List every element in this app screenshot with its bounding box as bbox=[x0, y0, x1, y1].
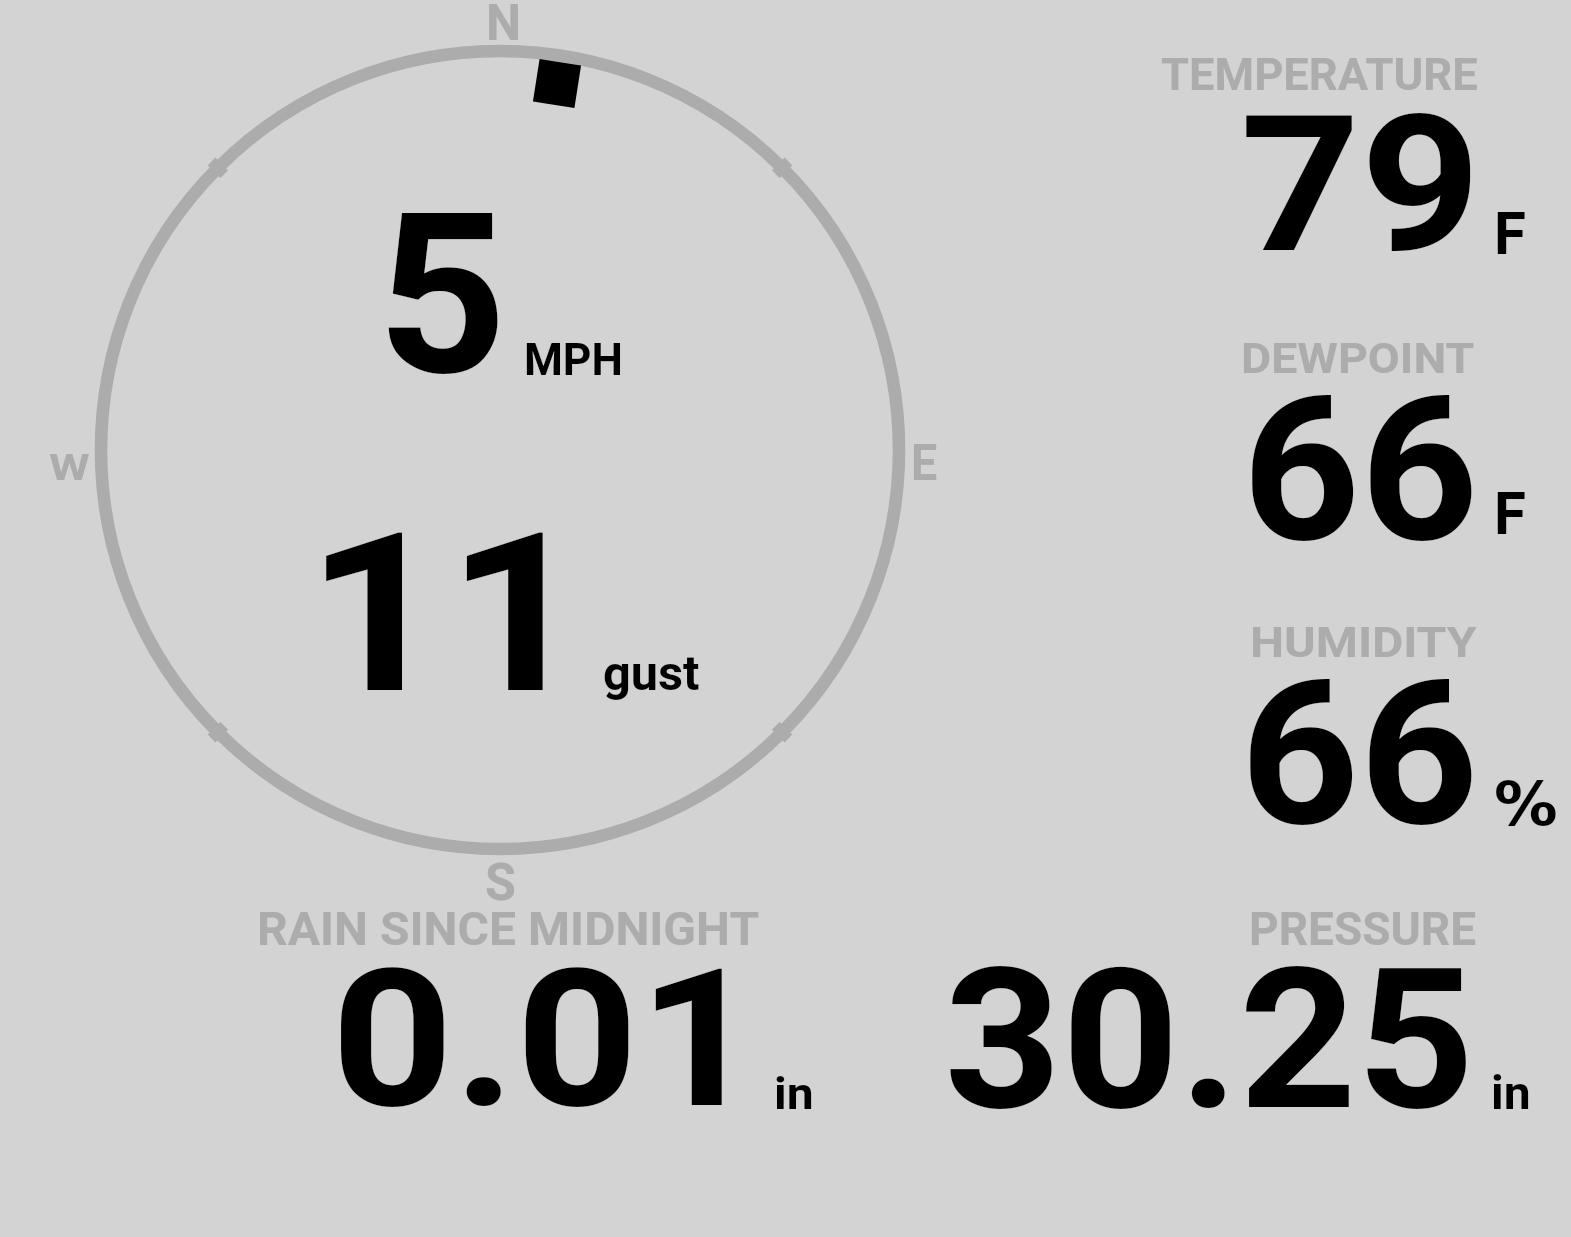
button[interactable]: TEMPERATURE bbox=[1000, 20, 1560, 290]
staticText: DEWPOINT bbox=[1241, 333, 1475, 384]
staticText: 79 bbox=[1240, 75, 1482, 296]
staticText: 66 bbox=[1240, 637, 1479, 872]
button[interactable]: HUMIDITY bbox=[1000, 585, 1560, 855]
staticText: E bbox=[911, 433, 938, 492]
staticText: 66 bbox=[1242, 353, 1479, 588]
staticText: F bbox=[1494, 200, 1526, 268]
staticText: % bbox=[1494, 769, 1558, 840]
staticText: TEMPERATURE bbox=[1161, 48, 1478, 101]
staticText: MPH bbox=[524, 333, 624, 386]
staticText: 0.01 bbox=[331, 927, 762, 1151]
staticText: HUMIDITY bbox=[1250, 617, 1477, 668]
button[interactable]: N bbox=[20, 0, 980, 900]
button[interactable]: DEWPOINT bbox=[1000, 300, 1560, 570]
staticText: W bbox=[49, 446, 91, 489]
staticText: in bbox=[774, 1068, 814, 1120]
staticText: S bbox=[485, 852, 517, 913]
staticText: 5 bbox=[377, 165, 508, 427]
staticText: 30.25 bbox=[944, 926, 1475, 1155]
staticText: PRESSURE bbox=[1249, 903, 1477, 956]
staticText: RAIN SINCE MIDNIGHT bbox=[257, 903, 760, 956]
button[interactable]: PRESSURE bbox=[900, 890, 1560, 1140]
staticText: 11 bbox=[306, 485, 588, 745]
staticText: N bbox=[486, 0, 522, 52]
button[interactable]: RAIN SINCE MIDNIGHT bbox=[180, 890, 880, 1140]
staticText: in bbox=[1491, 1067, 1531, 1120]
staticText: F bbox=[1494, 480, 1526, 548]
staticText: gust bbox=[603, 646, 700, 701]
button[interactable]: Wind direction north bbox=[533, 59, 581, 108]
